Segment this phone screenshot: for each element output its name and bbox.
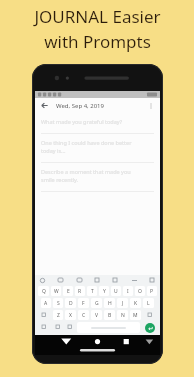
button[interactable]: Keyboard tool 2 [76,277,83,284]
button[interactable]: Describe a moment that made you [35,163,160,192]
button[interactable]: Keyboard tool 4 [112,277,119,284]
button[interactable]: Backspace [143,310,157,320]
button[interactable]: M [130,310,141,320]
staticText: A [44,300,48,307]
staticText: L [147,300,150,307]
staticText: R [78,288,82,295]
button[interactable]: V [91,310,102,320]
staticText: smile recently. [41,176,79,183]
staticText: X [69,312,72,319]
staticText: Describe a moment that made you [41,168,131,175]
button[interactable]: X [65,310,76,320]
staticText: B [108,312,112,319]
button[interactable]: T [87,286,97,296]
button[interactable]: Keyboard tool 1 [57,277,64,284]
staticText: F [82,300,85,307]
button[interactable]: Symbols [38,323,51,332]
staticText: N [121,312,125,319]
staticText: W [54,288,59,295]
staticText: O [138,288,142,295]
button[interactable]: What made you grateful today? [35,113,160,134]
staticText: D [69,300,73,307]
staticText: Q [42,288,46,295]
staticText: E [67,288,70,295]
staticText: One thing I could have done better [41,139,132,146]
button[interactable]: Keyboard tool 0 [39,277,46,284]
staticText: G [95,300,99,307]
button[interactable]: Keyboard tool 5 [131,277,138,284]
button[interactable]: Enter [145,323,155,333]
staticText: C [82,312,86,319]
button[interactable]: B [104,310,115,320]
button[interactable]: S [53,298,63,308]
button[interactable]: One thing I could have done better [35,134,160,163]
button[interactable]: Emoji [65,323,75,332]
button[interactable]: Space [77,322,140,333]
button[interactable]: O [135,286,145,296]
button[interactable]: K [130,298,141,308]
staticText: What made you grateful today? [41,118,123,125]
button[interactable]: Shift [38,310,51,320]
button[interactable]: H [104,298,115,308]
button[interactable]: Q [38,286,49,296]
button[interactable]: W [51,286,61,296]
button[interactable]: E [63,286,73,296]
button[interactable]: Z [53,310,63,320]
staticText: JOURNAL Easier [34,5,161,28]
button[interactable]: G [91,298,102,308]
button[interactable]: A [41,298,51,308]
staticText: P [150,288,154,295]
button[interactable]: Keyboard tool 6 [149,277,156,284]
staticText: M [133,312,138,319]
staticText: Wed, Sep 4, 2019 [56,102,104,110]
button[interactable]: More options [146,101,156,111]
button[interactable]: I [123,286,133,296]
button[interactable]: P [147,286,157,296]
button[interactable]: D [65,298,76,308]
staticText: U [114,288,118,295]
staticText: H [108,300,112,307]
staticText: Y [103,288,106,295]
button[interactable]: R [75,286,85,296]
staticText: today is... [41,147,66,154]
staticText: J [122,300,124,307]
button[interactable]: Back [39,100,50,111]
button[interactable]: L [143,298,154,308]
staticText: V [95,312,99,319]
staticText: Z [57,312,60,319]
button[interactable]: J [117,298,128,308]
button[interactable]: F [78,298,89,308]
button[interactable]: U [111,286,121,296]
button[interactable]: Y [99,286,109,296]
button[interactable]: N [117,310,128,320]
button[interactable]: Keyboard tool 3 [94,277,101,284]
staticText: S [57,300,60,307]
staticText: with Prompts [44,30,151,53]
staticText: T [91,288,94,295]
staticText: K [134,300,138,307]
button[interactable]: C [78,310,89,320]
button[interactable]: Comma [53,323,63,332]
staticText: I [127,288,129,295]
